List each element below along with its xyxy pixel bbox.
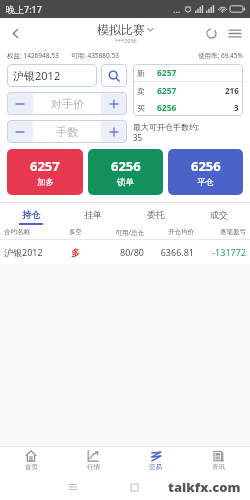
button[interactable]: 委托	[124, 203, 187, 225]
staticText: 权益: 1426948.53	[7, 51, 59, 60]
button[interactable]: 6257	[7, 149, 83, 195]
staticText: 使用率: 69.45%	[198, 51, 243, 60]
staticText: 卖	[137, 86, 151, 96]
button[interactable]: 交易	[124, 447, 187, 474]
button[interactable]: Increase 手数	[101, 120, 127, 143]
staticText: 加多	[37, 177, 54, 188]
staticText: 最大可开仓手数约:	[133, 121, 200, 132]
staticText: 平仓	[197, 177, 214, 188]
button[interactable]: 手数	[33, 120, 101, 143]
staticText: 持仓	[22, 209, 40, 220]
staticText: 216	[225, 85, 239, 96]
staticText: 晚上7:17	[6, 3, 42, 15]
button[interactable]: Increase 对手价	[101, 92, 127, 115]
staticText: 新	[137, 68, 151, 78]
button[interactable]: Recents	[66, 480, 80, 494]
staticText: 成交	[210, 209, 228, 220]
button[interactable]: Decrease 手数	[7, 120, 33, 143]
staticText: 6256	[157, 102, 177, 114]
staticText: 80/80	[94, 246, 144, 258]
button[interactable]: 沪银2012	[7, 64, 97, 87]
button[interactable]: 挂单	[62, 203, 124, 225]
button[interactable]: 6256	[168, 149, 243, 195]
staticText: 对手价	[51, 97, 84, 111]
staticText: 资讯	[212, 463, 225, 471]
button[interactable]: Search	[101, 64, 127, 87]
button[interactable]: Decrease 对手价	[7, 92, 33, 115]
staticText: 6257	[157, 67, 177, 79]
staticText: ***2956	[115, 37, 137, 44]
staticText: 挂单	[84, 209, 102, 220]
staticText: -131772	[194, 246, 246, 258]
staticText: 手数	[56, 125, 78, 139]
staticText: 35	[133, 132, 143, 143]
staticText: 可用: 435880.53	[71, 51, 119, 60]
button[interactable]: Refresh	[198, 20, 224, 46]
staticText: 3	[234, 102, 239, 113]
staticText: 委托	[147, 209, 165, 220]
staticText: 多空	[57, 228, 94, 236]
button[interactable]: Back	[0, 18, 30, 48]
staticText: 模拟比赛	[97, 22, 145, 37]
staticText: 6256	[111, 157, 141, 175]
staticText: 合约名称	[4, 228, 57, 236]
staticText: 逐笔盈亏	[194, 228, 246, 236]
button[interactable]: 沪银2012	[0, 240, 250, 264]
staticText: 首页	[25, 463, 38, 471]
staticText: ...	[173, 3, 181, 15]
staticText: 沪银2012	[13, 68, 61, 83]
staticText: 6257	[157, 85, 177, 97]
staticText: 开仓均价	[144, 228, 194, 236]
staticText: 6257	[30, 157, 60, 175]
staticText: 6256	[191, 157, 221, 175]
staticText: 交易	[149, 463, 162, 471]
button[interactable]: Menu	[224, 20, 246, 46]
button[interactable]: 资讯	[187, 447, 250, 474]
button[interactable]: 新	[133, 64, 243, 116]
staticText: talkfx.com	[168, 478, 241, 496]
staticText: 沪银2012	[4, 246, 57, 258]
button[interactable]: 持仓	[0, 203, 62, 225]
button[interactable]: 6256	[88, 149, 163, 195]
button[interactable]: 成交	[187, 203, 250, 225]
button[interactable]: 首页	[0, 447, 62, 474]
button[interactable]: 模拟比赛	[97, 22, 154, 44]
staticText: 买	[137, 103, 151, 113]
staticText: 可用/总仓	[94, 228, 144, 237]
button[interactable]: 对手价	[33, 92, 101, 115]
staticText: 6366.81	[144, 246, 194, 258]
staticText: 锁单	[117, 177, 134, 188]
staticText: 多	[57, 247, 94, 258]
button[interactable]: Overview	[127, 480, 141, 494]
button[interactable]: 行情	[62, 447, 124, 474]
staticText: 行情	[87, 463, 100, 471]
